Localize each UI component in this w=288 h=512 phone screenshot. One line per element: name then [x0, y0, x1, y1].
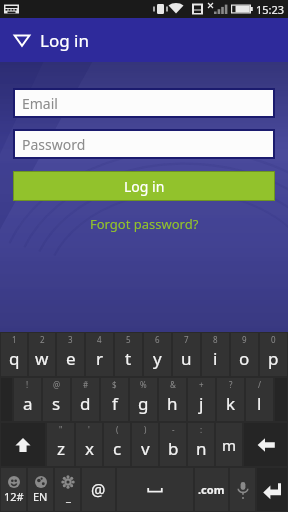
button[interactable]: 1	[1, 333, 27, 376]
staticText: i	[213, 347, 218, 370]
button[interactable]: _	[55, 468, 80, 511]
staticText: )	[144, 424, 147, 435]
staticText: %	[140, 379, 147, 390]
staticText: b	[168, 437, 179, 460]
button[interactable]: Password	[15, 131, 273, 157]
staticText: x	[85, 437, 94, 460]
staticText: g	[138, 392, 149, 415]
staticText: !	[26, 379, 29, 390]
button[interactable]: Space	[117, 468, 193, 511]
staticText: /	[258, 379, 261, 390]
staticText: &	[170, 379, 176, 390]
staticText: $	[112, 379, 117, 390]
button[interactable]: 12#	[1, 468, 26, 511]
staticText: :	[200, 424, 203, 435]
button[interactable]: ?	[217, 378, 244, 421]
button[interactable]: 0	[260, 333, 287, 376]
button[interactable]: Email	[15, 90, 273, 116]
staticText: Log in	[124, 177, 165, 196]
button[interactable]: Enter	[257, 468, 287, 511]
button[interactable]: 2	[29, 333, 55, 376]
staticText: d	[80, 392, 91, 415]
staticText: 3	[68, 334, 73, 345]
button[interactable]: -	[160, 423, 186, 466]
button[interactable]: @	[43, 378, 70, 421]
staticText: c	[113, 437, 122, 460]
staticText: Email	[22, 94, 58, 113]
button[interactable]: App logo	[14, 32, 30, 48]
button[interactable]: #	[72, 378, 99, 421]
staticText: n	[196, 437, 207, 460]
button[interactable]: 6	[144, 333, 171, 376]
staticText: 2	[40, 334, 45, 345]
staticText: f	[112, 392, 118, 415]
staticText: Password	[22, 135, 86, 154]
button[interactable]: !	[14, 378, 41, 421]
staticText: l	[257, 392, 262, 415]
staticText: r	[96, 347, 104, 370]
staticText: @	[53, 379, 61, 390]
staticText: p	[268, 347, 279, 370]
staticText: y	[153, 347, 162, 370]
staticText: m	[222, 435, 237, 455]
staticText: s	[52, 392, 61, 415]
button[interactable]: "	[47, 423, 74, 466]
staticText: e	[66, 347, 76, 370]
button[interactable]: &	[159, 378, 186, 421]
staticText: 6	[155, 334, 160, 345]
button[interactable]: m	[216, 423, 242, 466]
button[interactable]: Shift	[1, 423, 45, 466]
button[interactable]: 4	[86, 333, 113, 376]
button[interactable]: @	[82, 468, 115, 511]
button[interactable]: :	[188, 423, 214, 466]
staticText: _	[66, 489, 71, 504]
staticText: "	[59, 424, 63, 435]
staticText: 9	[242, 334, 247, 345]
staticText: 15:23	[256, 2, 285, 17]
button[interactable]: +	[188, 378, 215, 421]
staticText: @	[91, 479, 106, 501]
staticText: 8	[213, 334, 218, 345]
button[interactable]: 7	[173, 333, 200, 376]
staticText: j	[199, 392, 204, 415]
staticText: ?	[229, 379, 233, 390]
staticText: +	[199, 379, 204, 390]
button[interactable]: /	[246, 378, 273, 421]
staticText: (	[116, 424, 119, 435]
staticText: Log in	[40, 29, 89, 52]
button[interactable]: Backspace	[244, 423, 287, 466]
staticText: w	[35, 347, 49, 370]
button[interactable]: .com	[195, 468, 228, 511]
staticText: u	[181, 347, 192, 370]
staticText: o	[239, 347, 250, 370]
staticText: 0	[271, 334, 276, 345]
staticText: v	[141, 437, 150, 460]
staticText: .com	[198, 482, 225, 497]
button[interactable]: '	[76, 423, 102, 466]
staticText: 1	[12, 334, 17, 345]
button[interactable]: 9	[231, 333, 258, 376]
button[interactable]: $	[101, 378, 128, 421]
button[interactable]: Voice input	[230, 468, 255, 511]
button[interactable]: (	[104, 423, 130, 466]
staticText: 5	[126, 334, 131, 345]
staticText: -	[172, 424, 175, 435]
button[interactable]: 5	[115, 333, 142, 376]
button[interactable]: %	[130, 378, 157, 421]
button[interactable]: )	[132, 423, 158, 466]
button[interactable]: Forgot password?	[0, 214, 288, 234]
button[interactable]: Log in	[14, 172, 274, 200]
staticText: #	[83, 379, 89, 390]
button[interactable]: EN	[28, 468, 53, 511]
staticText: t	[125, 347, 132, 370]
staticText: z	[57, 437, 65, 460]
staticText: 12#	[4, 489, 24, 504]
button[interactable]: 8	[202, 333, 229, 376]
staticText: q	[9, 347, 20, 370]
staticText: a	[23, 392, 33, 415]
staticText: '	[88, 424, 90, 435]
button[interactable]: 3	[57, 333, 84, 376]
staticText: 4	[97, 334, 102, 345]
